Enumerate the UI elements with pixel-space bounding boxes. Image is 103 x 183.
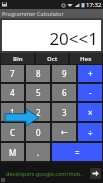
staticText: 1 (10, 107, 15, 118)
staticText: 7 (10, 68, 15, 79)
staticText: - (89, 87, 92, 98)
staticText: 4 (10, 87, 15, 98)
staticText: C (10, 127, 16, 138)
staticText: 6 (62, 87, 67, 98)
button[interactable]: 3 (52, 103, 76, 121)
button[interactable]: 7 (1, 65, 24, 82)
button[interactable]: 6 (52, 84, 76, 101)
staticText: M (9, 147, 17, 158)
button[interactable]: 9 (52, 65, 76, 82)
button[interactable]: M (1, 143, 24, 161)
button[interactable]: 0 (26, 123, 50, 141)
button[interactable]: ← (52, 123, 76, 141)
button[interactable]: 8 (26, 65, 50, 82)
button[interactable]: 5 (26, 84, 50, 101)
button[interactable]: C (1, 123, 24, 141)
button[interactable]: . (26, 143, 50, 161)
staticText: 3 (62, 107, 67, 118)
staticText: Bin (13, 55, 23, 63)
button[interactable]: Oct (36, 53, 68, 64)
staticText: 17:32 (86, 1, 102, 9)
staticText: developers.google.com/mob.. (6, 170, 84, 177)
staticText: = (75, 147, 80, 158)
button[interactable]: 4 (1, 84, 24, 101)
button[interactable]: 1 (1, 103, 24, 121)
staticText: 5 (36, 87, 41, 98)
staticText: Oct (47, 55, 58, 63)
staticText: 8 (36, 68, 41, 79)
staticText: + (88, 68, 93, 79)
staticText: × (88, 107, 93, 118)
button[interactable]: Hex (70, 53, 102, 64)
button[interactable]: + (78, 65, 102, 82)
button[interactable]: Bin (1, 53, 34, 64)
button[interactable]: - (78, 84, 102, 101)
staticText: . (37, 147, 40, 158)
staticText: 20<<1 (49, 27, 98, 50)
button[interactable]: Open ad (90, 168, 101, 179)
button[interactable]: 2 (26, 103, 50, 121)
staticText: ÷ (88, 127, 93, 138)
staticText: 9 (62, 68, 67, 79)
button[interactable]: × (78, 103, 102, 121)
staticText: 2 (36, 107, 41, 118)
button[interactable]: ÷ (78, 123, 102, 141)
button[interactable]: = (52, 143, 102, 161)
staticText: Programmer Calculator (2, 10, 64, 17)
staticText: ← (61, 128, 68, 137)
staticText: Hex (80, 55, 92, 63)
staticText: 0 (36, 127, 41, 138)
